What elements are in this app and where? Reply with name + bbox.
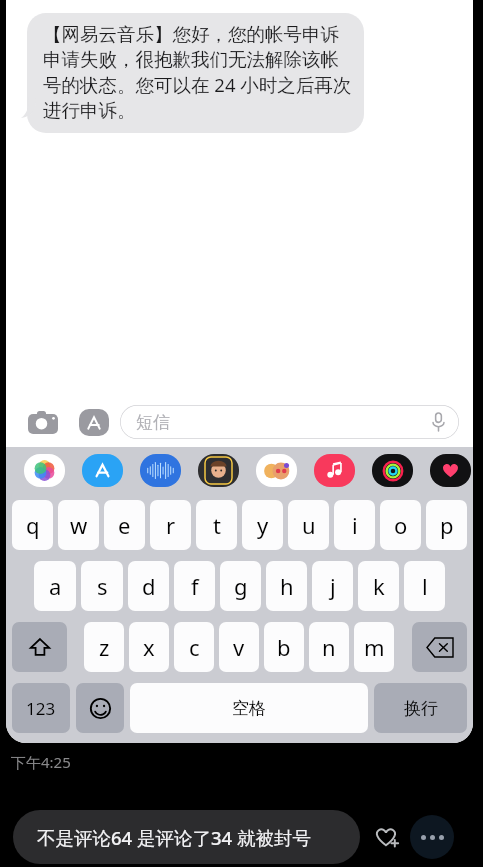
staticText: d bbox=[142, 571, 156, 601]
button[interactable]: g bbox=[220, 561, 261, 611]
staticText: 换行 bbox=[404, 698, 438, 719]
button[interactable]: Memoji bbox=[198, 454, 239, 487]
staticText: y bbox=[257, 510, 269, 540]
staticText: 【网易云音乐】您好，您的帐号申诉申请失败，很抱歉我们无法解除该帐号的状态。您可以… bbox=[43, 23, 352, 122]
button[interactable]: p bbox=[426, 500, 467, 550]
button[interactable]: j bbox=[312, 561, 353, 611]
button[interactable]: s bbox=[81, 561, 123, 611]
button[interactable]: Camera bbox=[26, 405, 60, 439]
staticText: i bbox=[352, 510, 358, 540]
button[interactable]: u bbox=[288, 500, 329, 550]
staticText: p bbox=[440, 510, 454, 540]
staticText: 不是评论64 是评论了34 就被封号 bbox=[37, 825, 311, 850]
button[interactable]: App Store bbox=[82, 454, 123, 487]
button[interactable]: 空格 bbox=[130, 683, 368, 733]
button[interactable]: e bbox=[104, 500, 145, 550]
staticText: z bbox=[99, 632, 110, 662]
button[interactable]: 123 bbox=[12, 683, 70, 733]
button[interactable]: Stickers bbox=[256, 454, 297, 487]
button[interactable]: k bbox=[358, 561, 399, 611]
button[interactable]: App Store bbox=[77, 405, 111, 439]
button[interactable]: 【网易云音乐】您好，您的帐号申诉申请失败，很抱歉我们无法解除该帐号的状态。您可以… bbox=[27, 13, 364, 133]
button[interactable]: o bbox=[380, 500, 421, 550]
button[interactable]: 不是评论64 是评论了34 就被封号 bbox=[13, 810, 360, 864]
staticText: h bbox=[280, 571, 294, 601]
staticText: 123 bbox=[26, 697, 56, 720]
staticText: m bbox=[364, 632, 385, 662]
button[interactable]: Backspace bbox=[412, 622, 467, 672]
staticText: 下午4:25 bbox=[11, 752, 71, 772]
staticText: t bbox=[213, 510, 221, 540]
button[interactable]: d bbox=[128, 561, 169, 611]
button[interactable]: Fitness bbox=[372, 454, 413, 487]
staticText: q bbox=[26, 510, 40, 540]
button[interactable]: l bbox=[404, 561, 445, 611]
button[interactable]: b bbox=[264, 622, 304, 672]
staticText: 空格 bbox=[232, 698, 266, 719]
button[interactable]: 短信 bbox=[120, 405, 459, 439]
button[interactable]: z bbox=[84, 622, 124, 672]
staticText: w bbox=[70, 510, 88, 540]
button[interactable]: Shift bbox=[12, 622, 67, 672]
button[interactable]: 换行 bbox=[374, 683, 467, 733]
button[interactable]: Health bbox=[430, 454, 471, 487]
staticText: k bbox=[373, 571, 385, 601]
staticText: n bbox=[322, 632, 336, 662]
staticText: 短信 bbox=[136, 412, 170, 433]
staticText: j bbox=[330, 571, 336, 601]
button[interactable]: Music bbox=[314, 454, 355, 487]
button[interactable]: More options bbox=[410, 815, 454, 859]
button[interactable]: v bbox=[219, 622, 259, 672]
button[interactable]: w bbox=[58, 500, 99, 550]
staticText: l bbox=[422, 571, 428, 601]
staticText: r bbox=[166, 510, 176, 540]
staticText: g bbox=[234, 571, 248, 601]
button[interactable]: h bbox=[266, 561, 307, 611]
staticText: s bbox=[97, 571, 108, 601]
staticText: x bbox=[143, 632, 155, 662]
button[interactable]: Photos bbox=[24, 454, 65, 487]
staticText: e bbox=[118, 510, 131, 540]
staticText: u bbox=[302, 510, 316, 540]
button[interactable]: i bbox=[334, 500, 375, 550]
button[interactable]: t bbox=[196, 500, 237, 550]
staticText: b bbox=[277, 632, 291, 662]
button[interactable]: r bbox=[150, 500, 191, 550]
button[interactable]: x bbox=[129, 622, 169, 672]
button[interactable]: f bbox=[174, 561, 215, 611]
staticText: f bbox=[191, 571, 199, 601]
button[interactable]: a bbox=[34, 561, 76, 611]
button[interactable]: Audio bbox=[140, 454, 181, 487]
button[interactable]: m bbox=[354, 622, 394, 672]
button[interactable]: Emoji bbox=[76, 683, 124, 733]
button[interactable]: n bbox=[309, 622, 349, 672]
staticText: a bbox=[49, 571, 62, 601]
staticText: v bbox=[233, 632, 245, 662]
button[interactable]: Like bbox=[366, 816, 408, 858]
button[interactable]: y bbox=[242, 500, 283, 550]
button[interactable]: q bbox=[12, 500, 53, 550]
staticText: c bbox=[189, 632, 200, 662]
button[interactable]: c bbox=[174, 622, 214, 672]
staticText: o bbox=[394, 510, 408, 540]
